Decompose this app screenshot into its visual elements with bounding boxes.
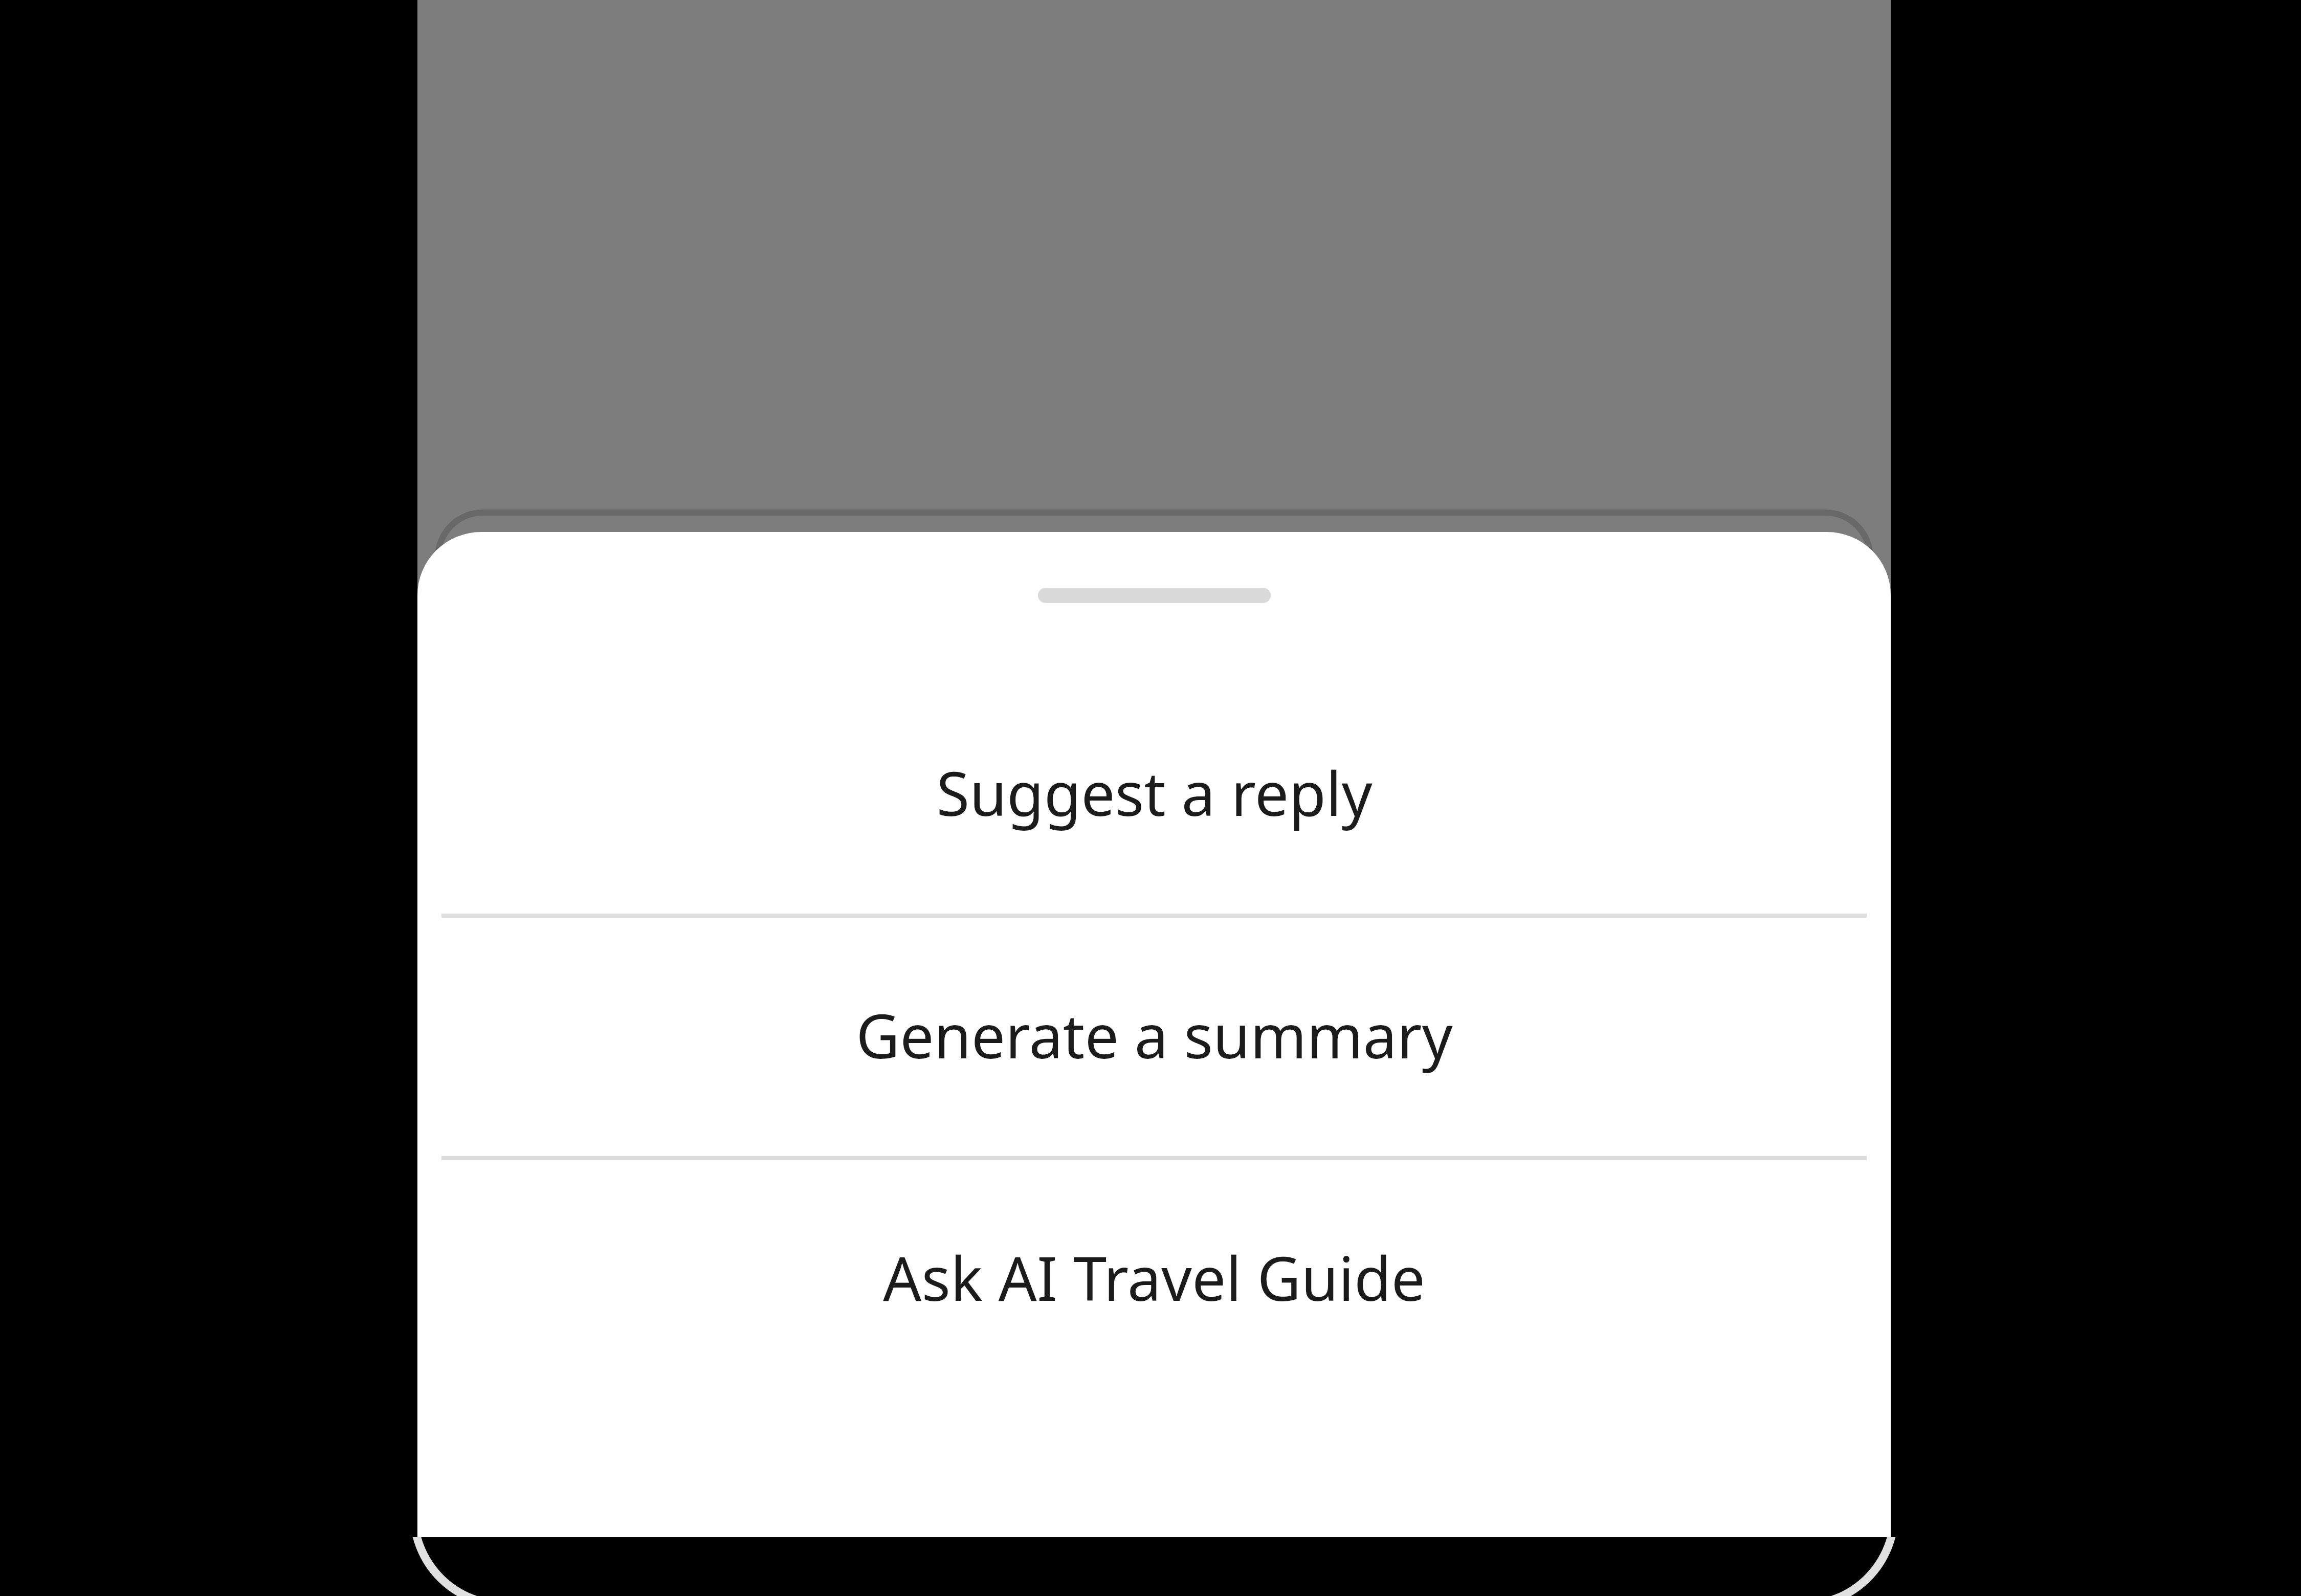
button[interactable] [1038, 588, 1271, 603]
staticText: Generate a summary [856, 994, 1453, 1076]
button[interactable]: Generate a summary [417, 914, 1891, 1156]
staticText: Suggest a reply [936, 751, 1373, 834]
staticText: Ask AI Travel Guide [883, 1236, 1425, 1319]
button[interactable]: Ask AI Travel Guide [417, 1156, 1891, 1399]
button[interactable]: Suggest a reply [417, 671, 1891, 914]
